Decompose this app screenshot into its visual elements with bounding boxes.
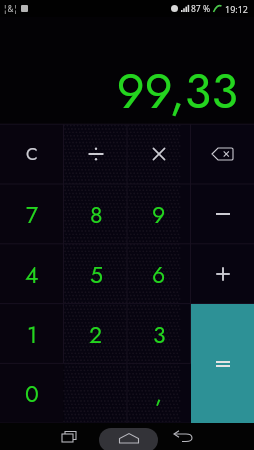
staticText: 0	[25, 377, 39, 410]
button[interactable]: Plus	[191, 244, 254, 304]
button[interactable]: Minus	[191, 184, 254, 244]
staticText: 19:12	[225, 3, 249, 15]
staticText: C	[26, 142, 38, 167]
staticText: ¦&¦	[3, 3, 18, 14]
button[interactable]: 7	[0, 184, 64, 244]
button[interactable]: Divide	[64, 124, 128, 184]
staticText: 7	[26, 198, 39, 231]
button[interactable]: Equals	[191, 304, 254, 424]
button[interactable]: Backspace	[191, 124, 254, 184]
button[interactable]: 8	[64, 184, 128, 244]
staticText: 8	[90, 198, 103, 231]
button[interactable]: 4	[0, 244, 64, 304]
button[interactable]: Multiply	[127, 124, 191, 184]
staticText: ,	[155, 377, 163, 410]
button[interactable]: 0	[0, 363, 64, 423]
button[interactable]: 9	[127, 184, 191, 244]
staticText: 99,33	[116, 56, 238, 127]
button[interactable]: Back	[167, 423, 199, 450]
staticText: 4	[25, 258, 39, 291]
button[interactable]: 5	[64, 244, 128, 304]
button[interactable]: C	[0, 124, 64, 184]
staticText: 87 %	[191, 3, 210, 15]
staticText: 6	[152, 258, 166, 291]
staticText: 1	[27, 318, 38, 351]
button[interactable]: 3	[127, 304, 191, 364]
button[interactable]: 6	[127, 244, 191, 304]
staticText: 5	[90, 258, 103, 291]
button[interactable]: 1	[0, 304, 64, 364]
button[interactable]: Recents	[56, 423, 88, 450]
staticText: 3	[153, 318, 166, 351]
staticText: 2	[89, 318, 103, 351]
button[interactable]: Home	[99, 428, 158, 450]
button[interactable]: ,	[127, 363, 191, 423]
button[interactable]: 2	[64, 304, 128, 364]
staticText: 9	[152, 198, 166, 231]
